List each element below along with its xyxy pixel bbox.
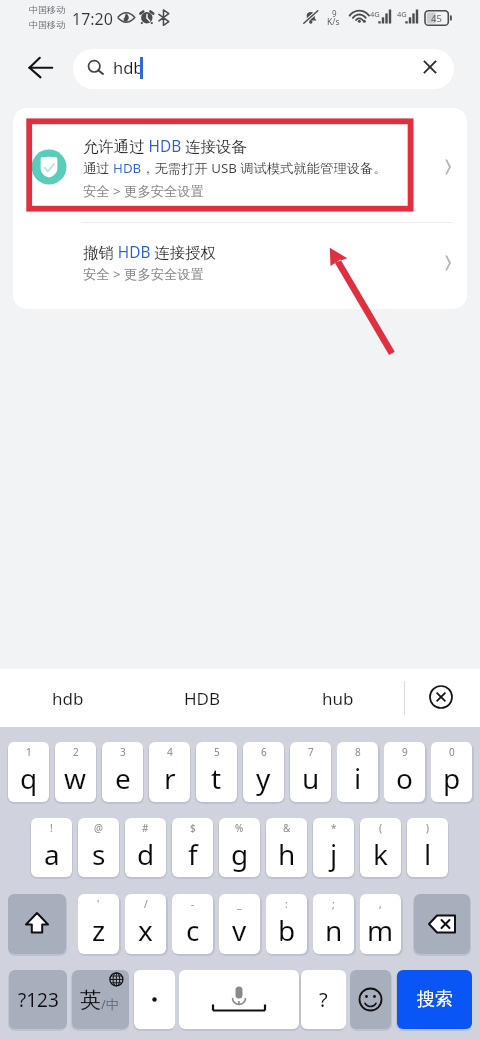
- button[interactable]: ;: [313, 894, 354, 954]
- staticText: 撤销 HDB 连接授权: [83, 242, 216, 263]
- staticText: ): [426, 821, 429, 835]
- staticText: hdb: [113, 56, 144, 78]
- staticText: w: [64, 759, 87, 797]
- button[interactable]: Key: [414, 894, 470, 954]
- staticText: ': [97, 897, 100, 911]
- button[interactable]: Key: [350, 970, 391, 1029]
- staticText: (: [379, 821, 382, 835]
- staticText: 通过 HDB，无需打开 USB 调试模式就能管理设备。: [83, 159, 387, 177]
- button[interactable]: Key: [301, 970, 346, 1029]
- button[interactable]: 3: [102, 742, 143, 802]
- button[interactable]: ': [78, 894, 119, 954]
- staticText: 9: [402, 745, 408, 759]
- button[interactable]: #: [125, 818, 166, 877]
- staticText: /: [144, 897, 148, 911]
- staticText: 9: [332, 8, 337, 19]
- staticText: t: [211, 759, 222, 797]
- button[interactable]: 允许通过 HDB 连接设备: [13, 108, 467, 222]
- staticText: x: [138, 911, 153, 949]
- staticText: m: [367, 911, 394, 949]
- button[interactable]: $: [172, 818, 213, 877]
- staticText: l: [424, 835, 432, 873]
- staticText: 8: [355, 745, 361, 759]
- staticText: h: [278, 835, 296, 873]
- button[interactable]: 9: [384, 742, 425, 802]
- button[interactable]: hub: [270, 669, 405, 727]
- staticText: 6: [261, 745, 267, 759]
- button[interactable]: Key: [134, 970, 175, 1029]
- staticText: c: [186, 911, 200, 949]
- staticText: !: [50, 821, 53, 835]
- staticText: ?123: [18, 987, 59, 1013]
- staticText: 7: [308, 745, 314, 759]
- staticText: ,: [379, 897, 382, 911]
- button[interactable]: (: [360, 818, 401, 877]
- button[interactable]: !: [31, 818, 72, 877]
- staticText: #: [142, 821, 149, 835]
- button[interactable]: Close suggestions: [419, 675, 463, 719]
- staticText: K/s: [327, 16, 340, 28]
- button[interactable]: Key: [8, 894, 66, 954]
- staticText: -: [191, 897, 195, 911]
- button[interactable]: hdb: [73, 49, 454, 89]
- staticText: 17:20: [72, 8, 113, 30]
- button[interactable]: -: [172, 894, 213, 954]
- staticText: 45: [431, 12, 442, 25]
- staticText: u: [302, 759, 320, 797]
- button[interactable]: hdb: [0, 669, 135, 727]
- button[interactable]: 撤销 HDB 连接授权: [13, 222, 467, 309]
- staticText: ?: [319, 986, 328, 1013]
- button[interactable]: Key: [9, 970, 67, 1029]
- staticText: 3: [120, 745, 126, 759]
- button[interactable]: &: [266, 818, 307, 877]
- staticText: 1: [26, 745, 32, 759]
- button[interactable]: %: [219, 818, 260, 877]
- button[interactable]: 4: [149, 742, 190, 802]
- staticText: 安全 > 更多安全设置: [83, 265, 204, 283]
- staticText: _: [237, 897, 242, 911]
- staticText: %: [235, 821, 244, 835]
- staticText: n: [325, 911, 343, 949]
- button[interactable]: Key: [72, 970, 129, 1029]
- button[interactable]: ): [407, 818, 448, 877]
- staticText: s: [92, 835, 106, 873]
- staticText: v: [232, 911, 247, 949]
- staticText: 英: [80, 987, 101, 1013]
- button[interactable]: 6: [243, 742, 284, 802]
- staticText: /中: [101, 995, 119, 1013]
- staticText: :: [285, 897, 288, 911]
- button[interactable]: :: [266, 894, 307, 954]
- button[interactable]: 5: [196, 742, 237, 802]
- staticText: @: [94, 821, 103, 835]
- button[interactable]: _: [219, 894, 260, 954]
- staticText: p: [443, 759, 461, 797]
- button[interactable]: 1: [8, 742, 49, 802]
- button[interactable]: 2: [55, 742, 96, 802]
- button[interactable]: HDB: [135, 669, 270, 727]
- staticText: q: [20, 759, 38, 797]
- staticText: 允许通过 HDB 连接设备: [83, 136, 247, 157]
- button[interactable]: ,: [360, 894, 401, 954]
- button[interactable]: 0: [431, 742, 472, 802]
- button[interactable]: @: [78, 818, 119, 877]
- button[interactable]: 7: [290, 742, 331, 802]
- staticText: 中国移动: [29, 19, 65, 30]
- staticText: y: [256, 759, 271, 797]
- staticText: 5: [214, 745, 220, 759]
- staticText: i: [354, 759, 362, 797]
- button[interactable]: /: [125, 894, 166, 954]
- staticText: *: [331, 821, 337, 835]
- staticText: ;: [332, 897, 335, 911]
- staticText: hub: [322, 687, 354, 710]
- staticText: 中国移动: [29, 4, 65, 15]
- button[interactable]: *: [313, 818, 354, 877]
- staticText: $: [190, 821, 196, 835]
- button[interactable]: Back: [23, 49, 59, 85]
- staticText: e: [115, 759, 131, 797]
- button[interactable]: 搜索: [397, 970, 472, 1029]
- button[interactable]: Key: [179, 970, 299, 1029]
- staticText: r: [164, 759, 176, 797]
- staticText: b: [278, 911, 296, 949]
- button[interactable]: 8: [337, 742, 378, 802]
- staticText: 安全 > 更多安全设置: [83, 182, 204, 200]
